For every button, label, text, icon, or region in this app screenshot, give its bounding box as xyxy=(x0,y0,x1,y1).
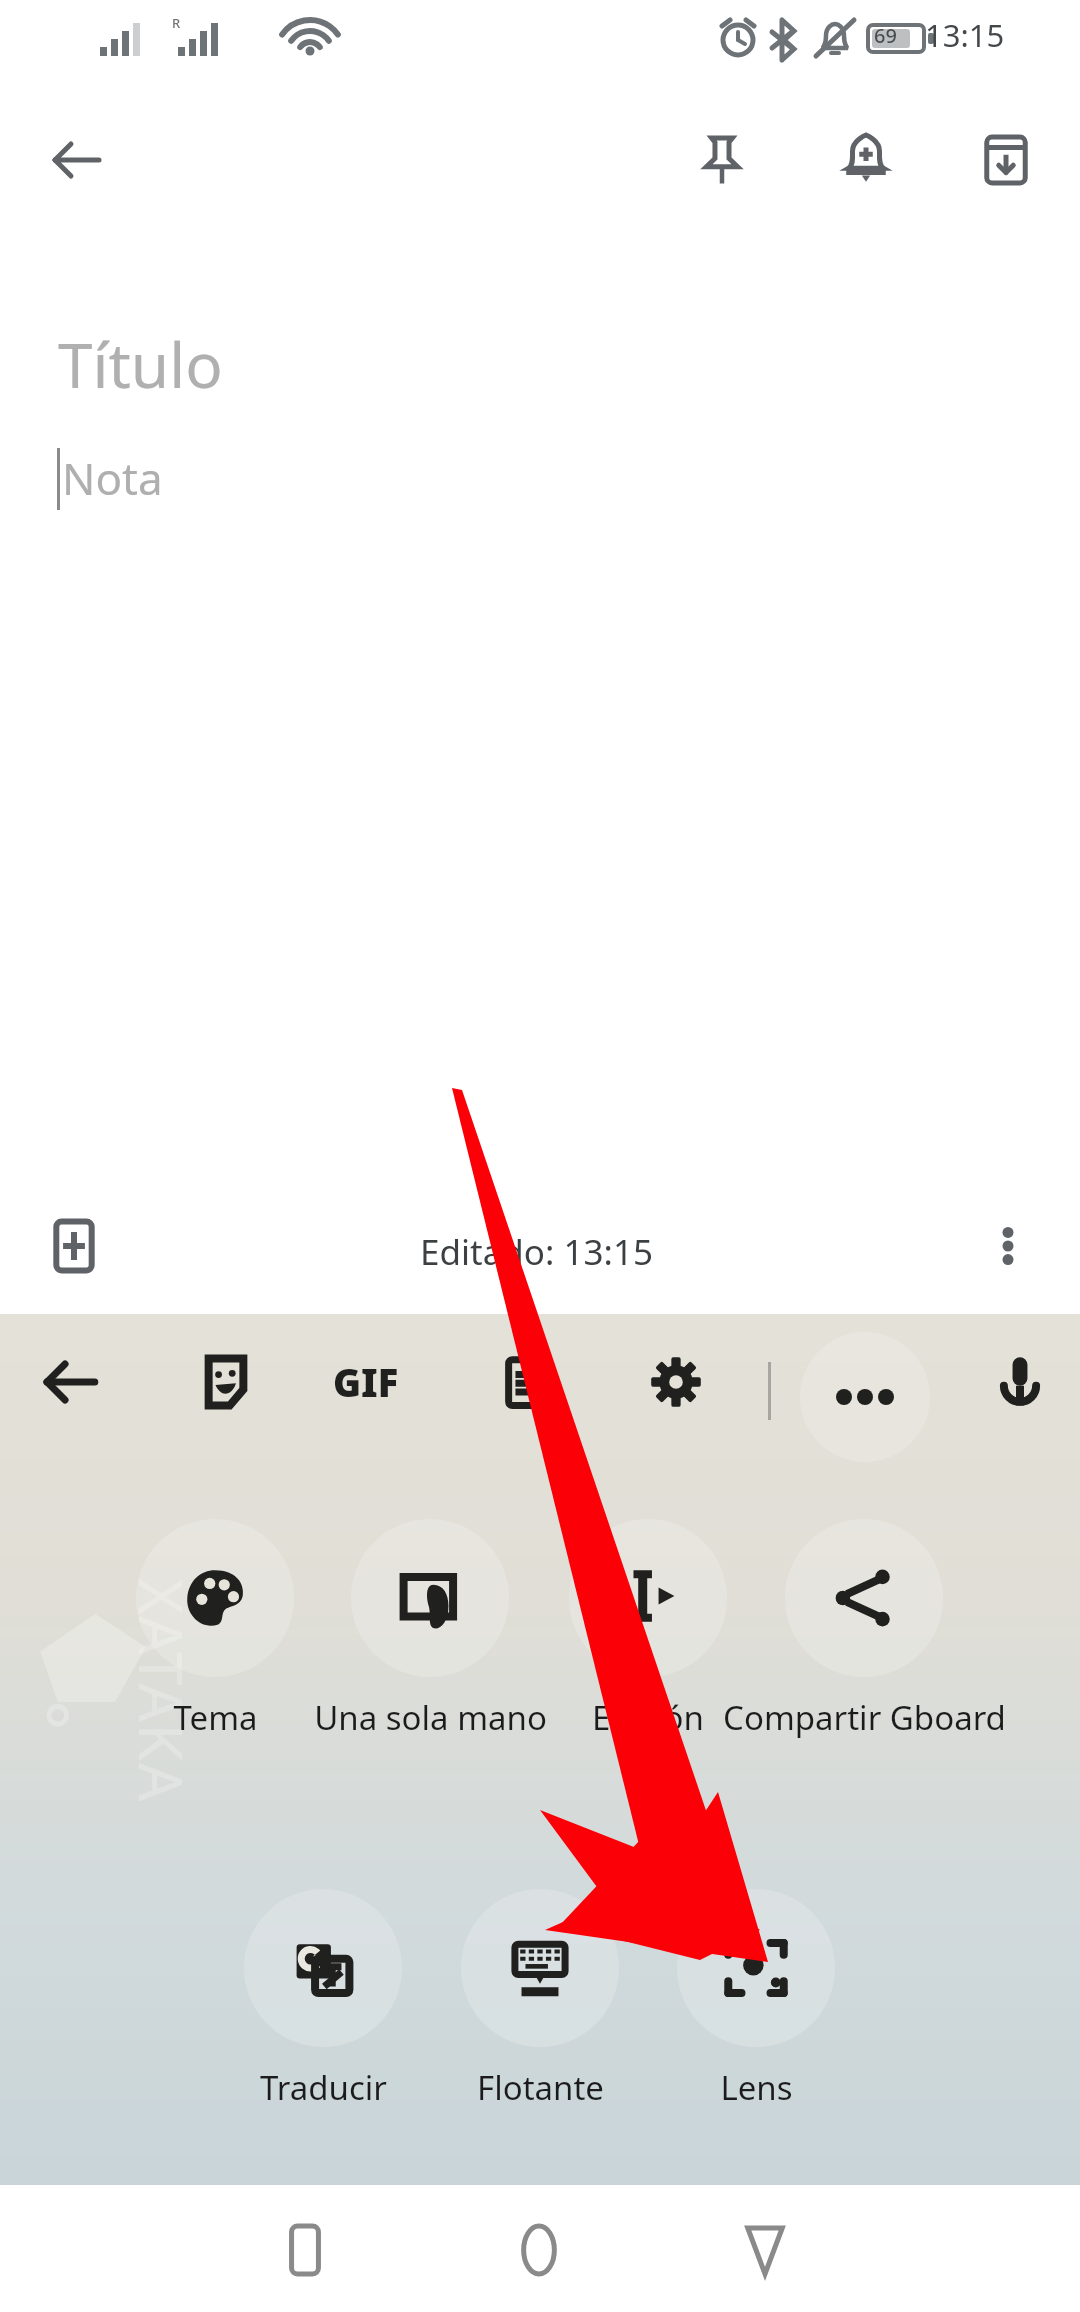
button[interactable] xyxy=(785,1519,943,1767)
staticText: Editado: 13:15 xyxy=(420,1228,653,1276)
button[interactable]: Nota xyxy=(62,448,163,508)
button[interactable]: More xyxy=(800,1332,930,1462)
button[interactable]: GIF xyxy=(318,1334,414,1430)
button[interactable]: Título xyxy=(58,322,223,406)
button[interactable]: Back xyxy=(722,2207,808,2293)
staticText: Edición xyxy=(592,1695,704,1740)
button[interactable]: Clipboard xyxy=(478,1334,574,1430)
button[interactable]: Stickers xyxy=(178,1334,274,1430)
button[interactable]: Voice input xyxy=(972,1334,1068,1430)
staticText: 13:15 xyxy=(925,14,1005,56)
button[interactable]: Archive xyxy=(962,116,1050,204)
staticText: Lens xyxy=(720,2065,793,2110)
button[interactable] xyxy=(351,1519,509,1767)
button[interactable]: Add xyxy=(28,1200,120,1292)
button[interactable]: Back xyxy=(34,118,118,202)
staticText: Tema xyxy=(173,1695,258,1740)
button[interactable]: Pin note xyxy=(678,116,766,204)
staticText: Una sola mano xyxy=(314,1695,547,1740)
button[interactable] xyxy=(569,1519,727,1767)
button[interactable] xyxy=(244,1889,402,2137)
staticText: Flotante xyxy=(477,2065,604,2110)
staticText: Traducir xyxy=(260,2065,387,2110)
button[interactable]: Settings xyxy=(628,1334,724,1430)
button[interactable]: Recents xyxy=(262,2207,348,2293)
staticText: R xyxy=(172,14,181,32)
button[interactable] xyxy=(136,1519,294,1767)
staticText: GIF xyxy=(333,1356,399,1408)
staticText: Compartir Gboard xyxy=(723,1695,1006,1740)
staticText: 69 xyxy=(874,22,897,49)
button[interactable]: More options xyxy=(962,1200,1054,1292)
button[interactable]: Close toolbar xyxy=(22,1334,118,1430)
staticText: XATAKA BASICS xyxy=(113,1579,203,1999)
button[interactable] xyxy=(677,1889,835,2137)
button[interactable] xyxy=(461,1889,619,2137)
button[interactable]: Reminder xyxy=(822,116,910,204)
button[interactable]: Home xyxy=(496,2207,582,2293)
